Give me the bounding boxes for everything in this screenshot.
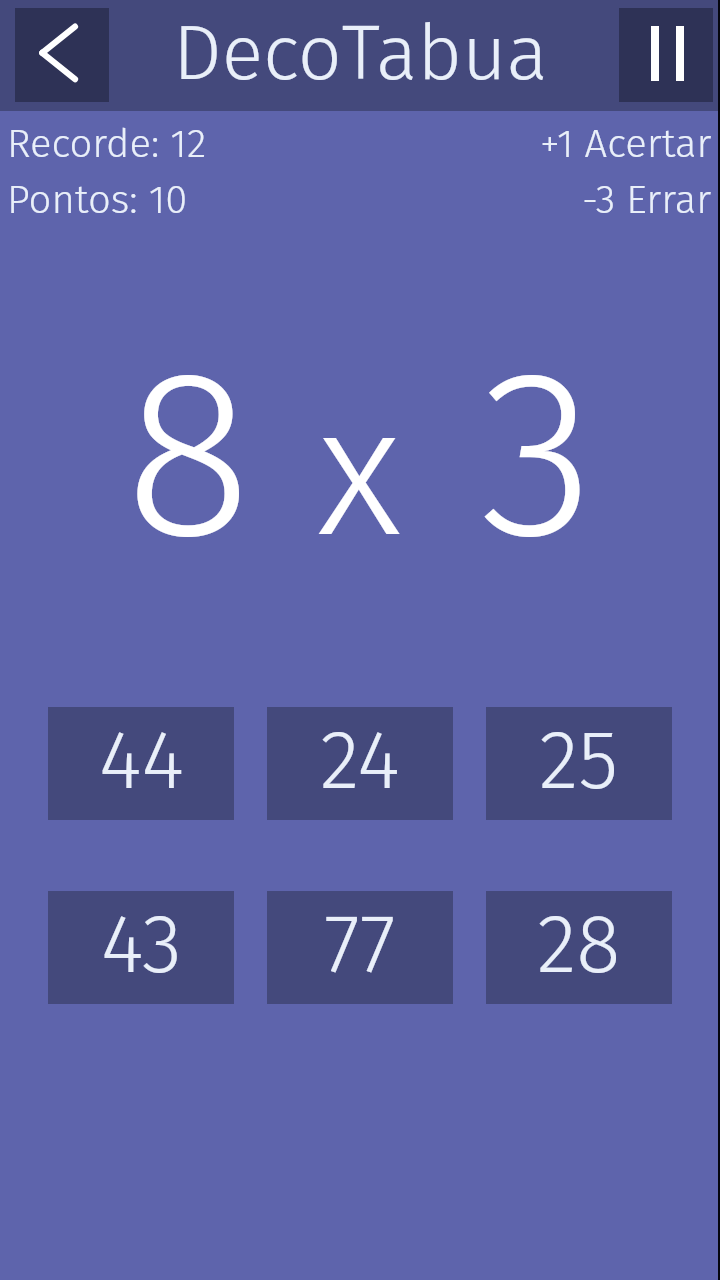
staticText: 3 xyxy=(480,314,595,564)
button[interactable]: Pause xyxy=(619,8,713,102)
button[interactable]: 77 xyxy=(267,891,453,1004)
staticText: 77 xyxy=(324,895,396,993)
button[interactable]: 24 xyxy=(267,707,453,820)
staticText: Recorde: 12 xyxy=(7,120,207,168)
staticText: 25 xyxy=(539,711,619,809)
staticText: x xyxy=(317,362,402,583)
staticText: Pontos: 10 xyxy=(7,176,188,224)
button[interactable]: 25 xyxy=(486,707,672,820)
staticText: -3 Errar xyxy=(582,176,712,224)
button[interactable]: 44 xyxy=(48,707,234,820)
staticText: 28 xyxy=(537,895,621,993)
staticText: 43 xyxy=(101,895,182,993)
button[interactable]: 28 xyxy=(486,891,672,1004)
button[interactable]: Back xyxy=(15,8,109,102)
staticText: DecoTabua xyxy=(173,7,548,99)
staticText: 44 xyxy=(99,711,184,809)
staticText: 24 xyxy=(320,711,400,809)
button[interactable]: 43 xyxy=(48,891,234,1004)
staticText: 8 xyxy=(125,314,252,564)
staticText: +1 Acertar xyxy=(540,120,712,168)
